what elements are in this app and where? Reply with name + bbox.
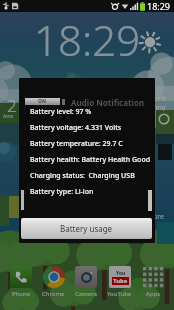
staticText: Battery usage	[60, 223, 113, 234]
button[interactable]: Camera	[75, 266, 97, 298]
staticText: Battery health: Battery Health Good	[30, 155, 150, 165]
staticText: Camera	[75, 290, 97, 298]
staticText: YouTube	[107, 290, 132, 298]
staticText: 2	[7, 94, 17, 114]
button[interactable]: You	[107, 266, 132, 298]
button[interactable]: Battery usage	[21, 218, 152, 239]
staticText: 18:29	[147, 0, 171, 12]
staticText: Audio Notification	[71, 97, 145, 107]
staticText: nsd	[153, 94, 165, 102]
staticText: Battery temperature: 29.7 C	[30, 139, 123, 149]
staticText: 18:29	[34, 11, 141, 68]
staticText: Battery level: 97 %	[30, 107, 92, 117]
button[interactable]	[19, 78, 155, 243]
staticText: You	[116, 270, 126, 277]
button[interactable]: Apps	[142, 266, 164, 298]
staticText: Chrome	[42, 290, 65, 298]
button[interactable]: Phone	[10, 266, 32, 298]
button[interactable]: Chrome	[42, 266, 65, 298]
staticText: ON	[38, 98, 47, 105]
staticText: nny	[153, 103, 166, 111]
staticText: Battery voltage: 4.331 Volts	[30, 123, 122, 133]
staticText: Apps	[146, 290, 161, 298]
staticText: Battery type: Li-ion	[30, 187, 94, 197]
staticText: Phone	[12, 290, 31, 298]
staticText: ore	[153, 212, 164, 221]
staticText: Ams	[3, 113, 14, 120]
staticText: Charging status: Charging USB	[30, 171, 135, 181]
staticText: Tube	[113, 277, 128, 285]
